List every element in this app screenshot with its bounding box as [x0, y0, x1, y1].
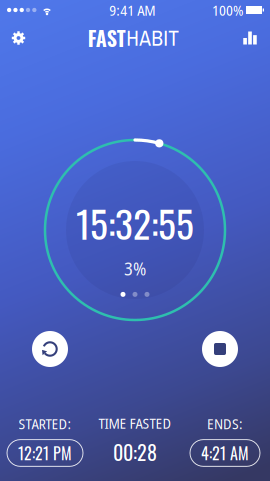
- staticText: 15:32:55: [76, 195, 194, 250]
- button[interactable]: Reset: [28, 327, 72, 371]
- staticText: 12:21 PM: [18, 441, 72, 465]
- staticText: 9:41 AM: [109, 0, 155, 20]
- staticText: 3%: [124, 255, 146, 281]
- staticText: ENDS:: [207, 414, 243, 434]
- button[interactable]: Settings: [0, 20, 37, 56]
- staticText: 00:28: [113, 437, 157, 467]
- staticText: 4:21 AM: [201, 441, 249, 465]
- staticText: STARTED:: [18, 414, 71, 434]
- staticText: FAST: [88, 23, 126, 53]
- button[interactable]: Stop: [198, 327, 242, 371]
- button[interactable]: Statistics: [230, 20, 270, 56]
- staticText: 100%: [212, 0, 243, 20]
- staticText: HABIT: [126, 24, 179, 52]
- staticText: TIME FASTED: [98, 413, 171, 433]
